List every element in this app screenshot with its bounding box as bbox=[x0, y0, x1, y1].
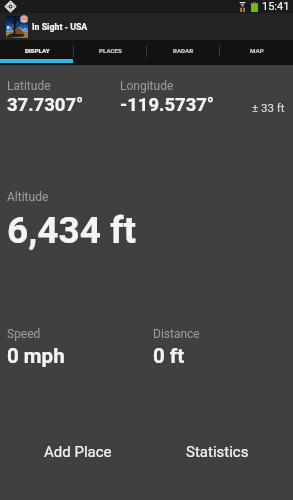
button[interactable]: Statistics bbox=[144, 404, 291, 500]
staticText: Latitude bbox=[7, 79, 51, 93]
staticText: ± 33 ft bbox=[252, 101, 285, 114]
staticText: 15:41 bbox=[262, 0, 290, 13]
button[interactable]: MAP bbox=[220, 40, 293, 65]
staticText: 0 mph bbox=[7, 344, 65, 368]
staticText: Speed bbox=[7, 327, 41, 341]
staticText: -119.5737° bbox=[120, 94, 215, 116]
staticText: DISPLAY bbox=[25, 47, 50, 54]
button[interactable]: In Sight app icon bbox=[6, 16, 28, 38]
button[interactable]: Add Place bbox=[5, 404, 151, 500]
staticText: 6,434 ft bbox=[7, 209, 136, 252]
staticText: Add Place bbox=[44, 443, 112, 461]
button[interactable]: RADAR bbox=[147, 40, 220, 65]
button[interactable]: DISPLAY bbox=[0, 40, 74, 65]
button[interactable]: In Sight app icon bbox=[0, 13, 293, 40]
staticText: RADAR bbox=[173, 47, 194, 54]
staticText: MAP bbox=[250, 47, 264, 54]
other: Location bbox=[5, 1, 16, 12]
staticText: Altitude bbox=[7, 190, 49, 204]
staticText: PLACES bbox=[99, 47, 122, 54]
staticText: Distance bbox=[153, 327, 200, 341]
staticText: 37.7307° bbox=[7, 94, 84, 116]
staticText: 0 ft bbox=[153, 344, 185, 368]
staticText: In Sight - USA bbox=[32, 22, 88, 32]
button[interactable]: PLACES bbox=[74, 40, 147, 65]
staticText: Longitude bbox=[120, 79, 174, 93]
staticText: Statistics bbox=[186, 443, 249, 461]
